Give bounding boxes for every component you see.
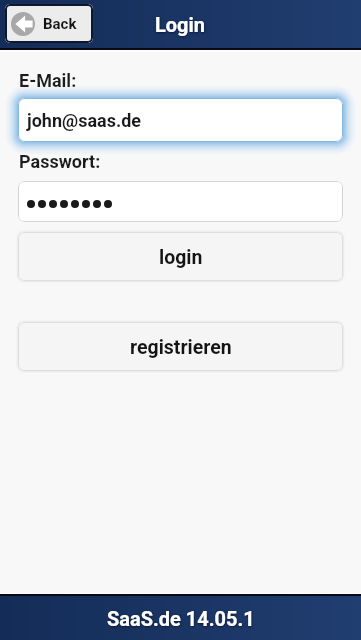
button[interactable] — [18, 181, 343, 222]
staticText: login — [159, 246, 203, 269]
button[interactable]: Back — [5, 4, 93, 43]
staticText: Passwort: — [19, 151, 101, 172]
staticText: SaaS.de 14.05.1 — [107, 607, 255, 630]
button[interactable]: john@saas.de — [18, 98, 343, 142]
button[interactable]: login — [18, 232, 343, 281]
staticText: Login — [155, 13, 206, 36]
staticText: E-Mail: — [19, 70, 77, 91]
staticText: Back — [43, 15, 77, 33]
staticText: registrieren — [130, 336, 232, 359]
button[interactable]: registrieren — [18, 322, 343, 371]
staticText: john@saas.de — [27, 110, 141, 131]
